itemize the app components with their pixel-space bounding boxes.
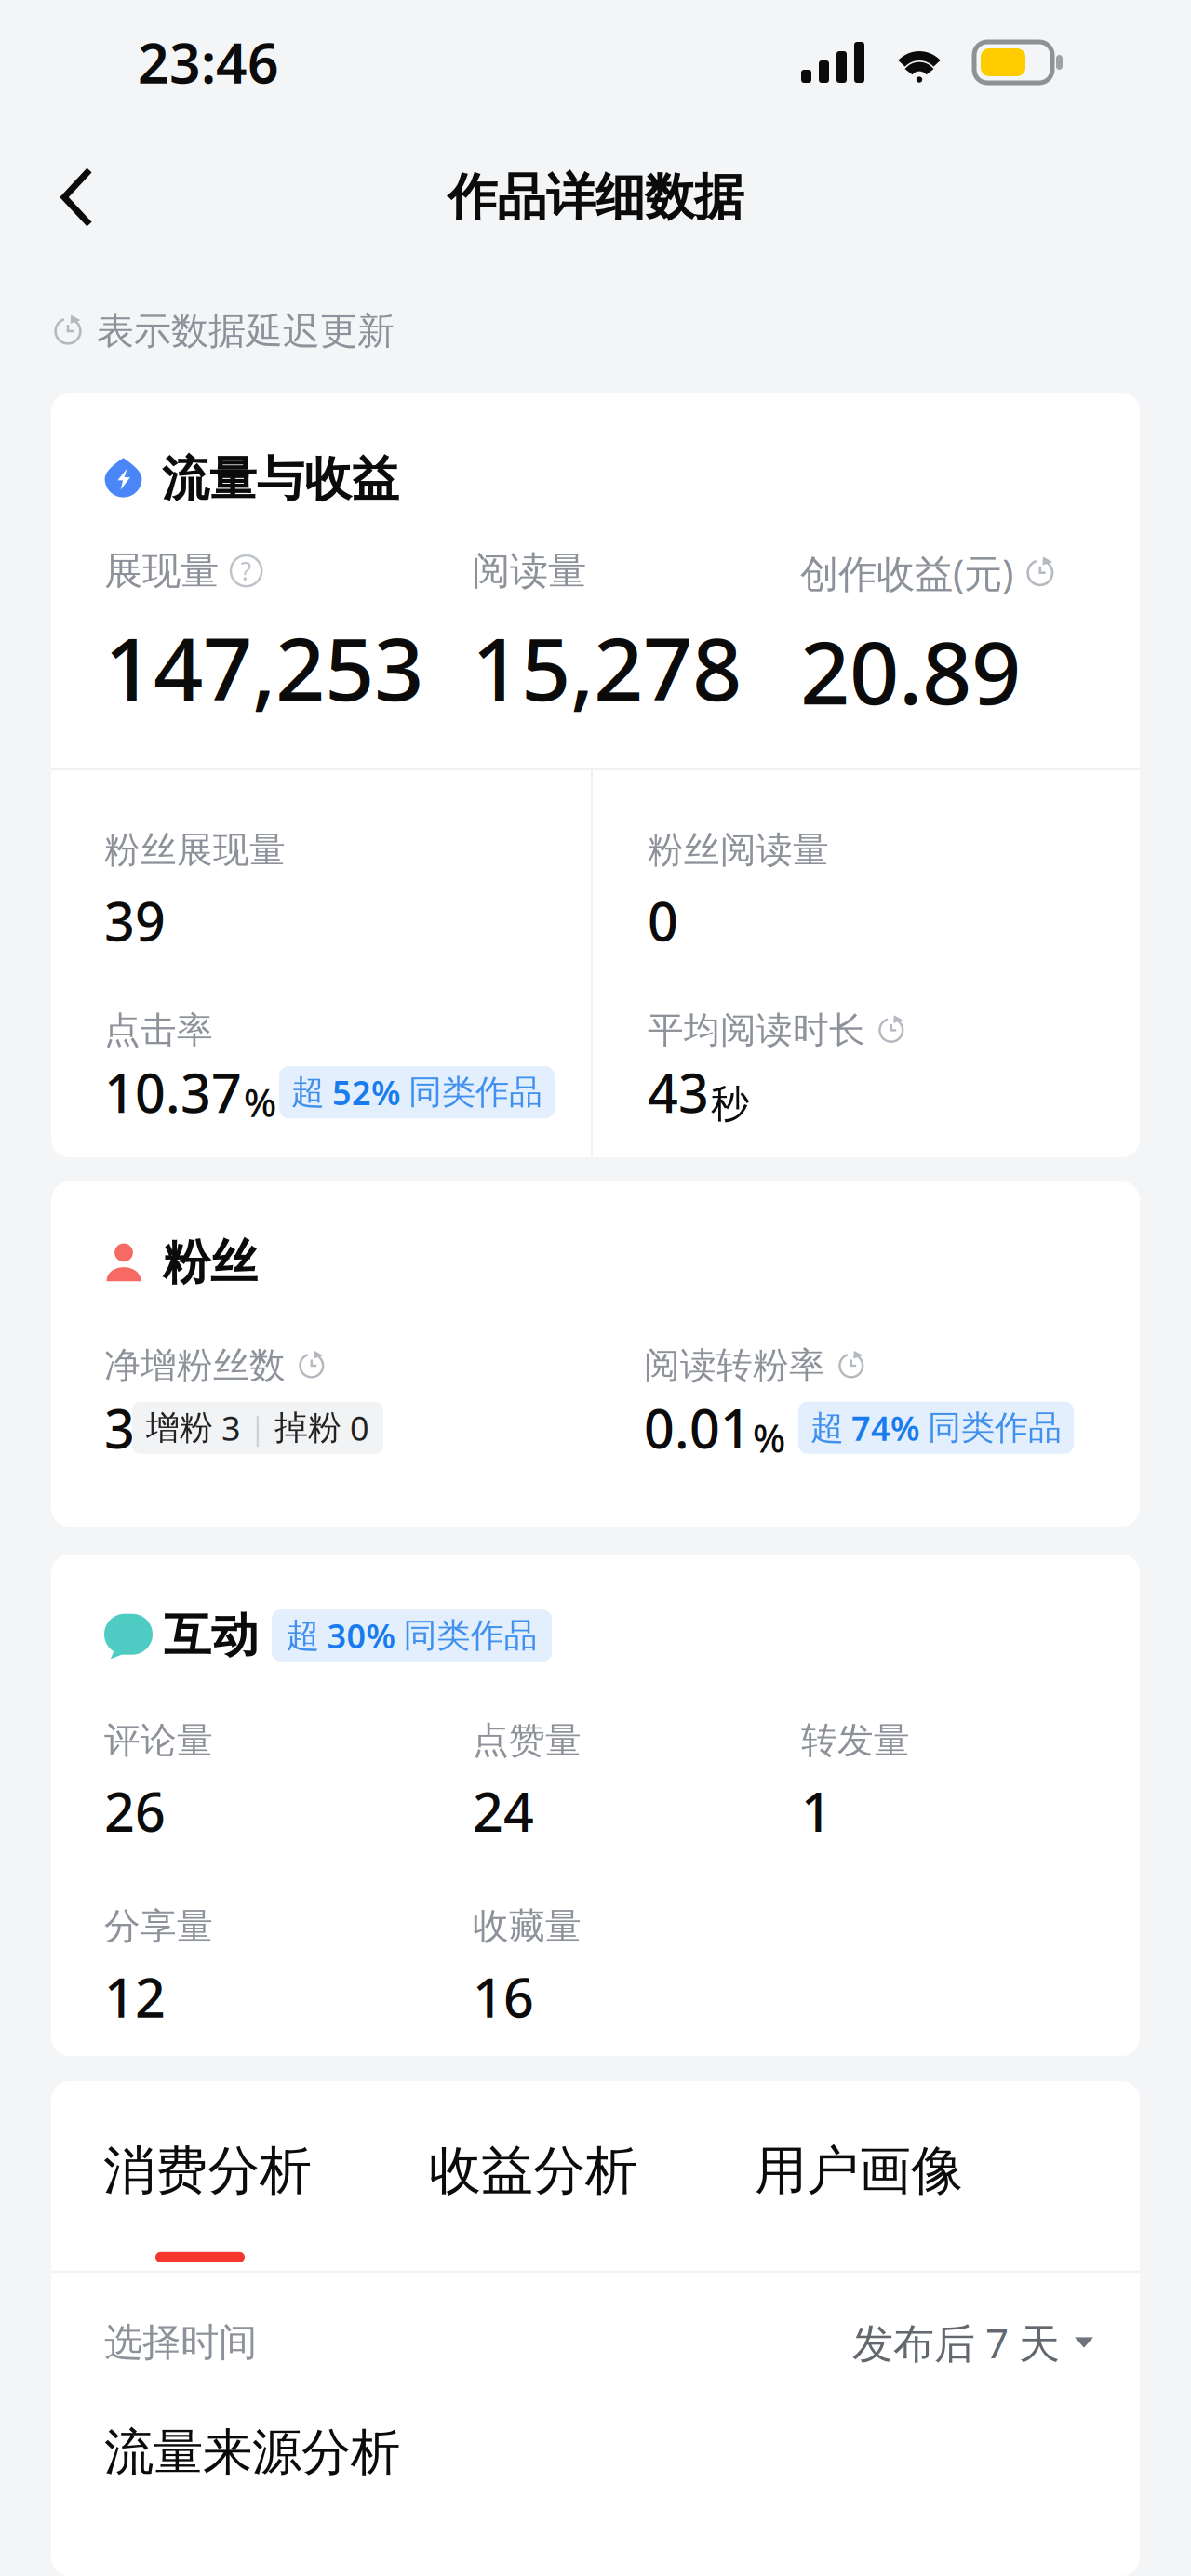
staticText: 表示数据延迟更新 (97, 308, 395, 354)
staticText: 0 (648, 885, 678, 956)
staticText: 平均阅读时长 (648, 1008, 865, 1052)
staticText: 16 (473, 1961, 534, 2032)
staticText: % (753, 1412, 785, 1463)
staticText: 掉粉 (274, 1407, 341, 1448)
staticText: 发布后 7 天 (852, 2315, 1060, 2370)
staticText: 39 (104, 885, 166, 956)
staticText: 10.37 (104, 1057, 242, 1128)
staticText: 增粉 (146, 1407, 213, 1448)
staticText: 点赞量 (473, 1718, 582, 1763)
staticText: 评论量 (104, 1718, 213, 1763)
staticText: 作品详细数据 (448, 167, 743, 228)
staticText: 0 (350, 1405, 369, 1450)
button[interactable]: 消费分析 (103, 2139, 429, 2271)
staticText: 超 (286, 1615, 320, 1656)
staticText: 阅读转粉率 (644, 1344, 825, 1388)
staticText: 23:46 (138, 26, 279, 99)
staticText: 消费分析 (103, 2139, 312, 2203)
staticText: 同类作品 (403, 1615, 537, 1656)
staticText: 26 (104, 1776, 166, 1846)
staticText: 1 (801, 1776, 832, 1846)
staticText: 互动 (164, 1607, 259, 1664)
staticText: 粉丝阅读量 (648, 828, 829, 872)
staticText: 12 (104, 1961, 166, 2032)
staticText: ? (241, 554, 252, 587)
staticText: 同类作品 (928, 1407, 1062, 1448)
staticText: 超 (291, 1072, 325, 1113)
staticText: 阅读量 (472, 547, 586, 594)
staticText: 15,278 (472, 609, 742, 725)
staticText: 转发量 (801, 1718, 910, 1763)
staticText: 52% (332, 1070, 401, 1114)
staticText: 3 (221, 1405, 241, 1450)
staticText: 净增粉丝数 (104, 1344, 286, 1388)
staticText: 3 (104, 1392, 135, 1463)
button[interactable]: 收益分析 (429, 2139, 755, 2271)
staticText: 粉丝展现量 (104, 828, 286, 872)
staticText: 用户画像 (755, 2139, 963, 2203)
staticText: 流量来源分析 (104, 2422, 400, 2483)
button[interactable]: 发布后 7 天 (852, 2315, 1093, 2370)
staticText: 收藏量 (473, 1904, 582, 1948)
staticText: 创作收益(元) (800, 547, 1013, 598)
staticText: 粉丝 (163, 1234, 258, 1291)
staticText: 20.89 (800, 613, 1021, 728)
staticText: 0.01 (644, 1392, 751, 1463)
staticText: 43 (648, 1057, 709, 1128)
staticText: % (244, 1077, 276, 1128)
staticText: 超 (810, 1407, 844, 1448)
staticText: 点击率 (104, 1008, 213, 1052)
staticText: 选择时间 (104, 2319, 257, 2366)
staticText: 分享量 (104, 1904, 213, 1948)
staticText: 流量与收益 (162, 450, 399, 508)
staticText: 24 (473, 1776, 534, 1846)
staticText: 30% (327, 1613, 396, 1658)
staticText: | (249, 1408, 266, 1448)
button[interactable]: 用户画像 (755, 2139, 1080, 2271)
staticText: 展现量 (104, 547, 219, 594)
staticText: 秒 (711, 1080, 749, 1128)
staticText: 收益分析 (429, 2139, 637, 2203)
staticText: 74% (851, 1405, 920, 1450)
staticText: 147,253 (104, 609, 423, 725)
staticText: 同类作品 (408, 1072, 542, 1113)
button[interactable]: Back (22, 142, 132, 252)
